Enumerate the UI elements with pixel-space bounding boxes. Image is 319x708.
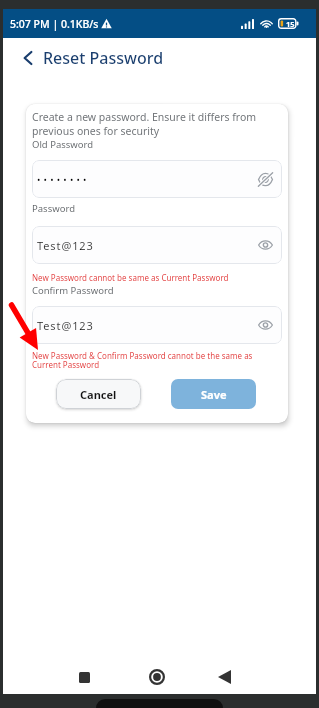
staticText: Confirm Password <box>32 284 114 297</box>
staticText: Old Password <box>32 138 94 151</box>
staticText: Cancel <box>80 387 117 402</box>
button[interactable]: Back <box>210 663 238 691</box>
button[interactable]: Test@123 <box>37 226 274 264</box>
button[interactable]: Home <box>143 663 171 691</box>
staticText: Create a new password. Ensure it differs… <box>32 110 282 138</box>
button[interactable]: Test@123 <box>37 306 274 344</box>
button[interactable]: Back <box>19 49 37 67</box>
staticText: Save <box>201 387 227 402</box>
staticText: Password <box>32 202 75 215</box>
staticText: Test@123 <box>37 318 94 333</box>
button[interactable]: Save <box>171 379 256 409</box>
button[interactable]: •••••••• <box>37 160 274 198</box>
button[interactable]: Recent apps <box>70 663 98 691</box>
button[interactable]: Hide password <box>256 315 274 335</box>
button[interactable]: Hide password <box>256 235 274 255</box>
staticText: Reset Password <box>43 47 164 69</box>
staticText: New Password & Confirm Password cannot b… <box>32 350 253 371</box>
staticText: Test@123 <box>37 238 94 253</box>
staticText: •••••••• <box>37 173 90 185</box>
button[interactable]: Show password <box>256 169 274 189</box>
button[interactable]: Cancel <box>56 379 141 409</box>
staticText: 5:07 PM | 0.1KB/s <box>10 17 99 31</box>
staticText: New Password cannot be same as Current P… <box>32 272 229 283</box>
staticText: 15 <box>286 19 295 29</box>
